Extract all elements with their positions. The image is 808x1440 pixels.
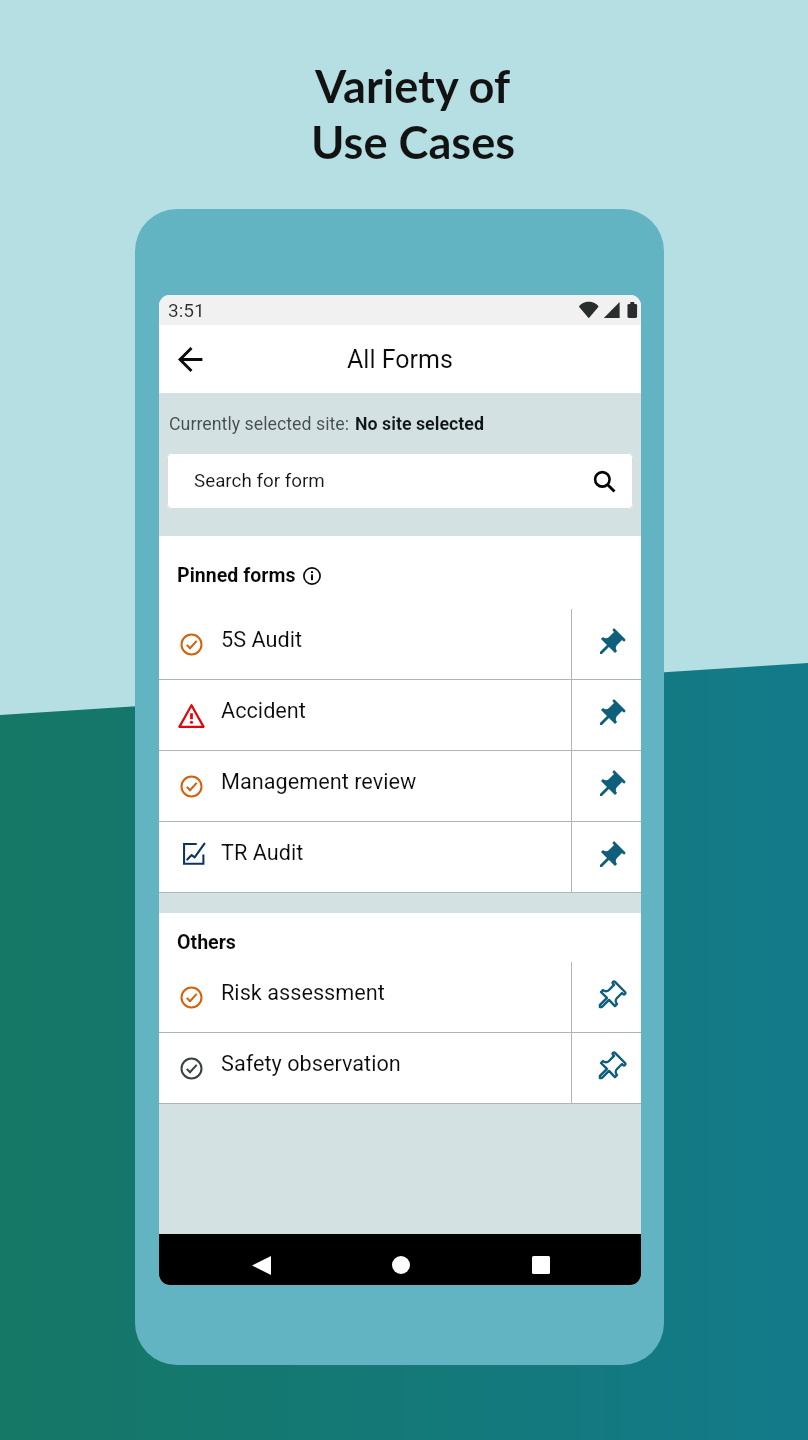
staticText: Management review: [221, 769, 417, 794]
staticText: No site selected: [355, 413, 484, 434]
button[interactable]: 5S Audit: [159, 609, 641, 679]
staticText: Others: [177, 931, 236, 954]
button[interactable]: Pin Safety observation: [572, 1033, 641, 1103]
button[interactable]: Accident: [159, 680, 641, 750]
button[interactable]: Management review: [159, 751, 641, 821]
button[interactable]: TR Audit: [159, 822, 641, 892]
staticText: All Forms: [347, 345, 453, 374]
staticText: Safety observation: [221, 1051, 401, 1076]
staticText: 3:51: [168, 299, 205, 321]
button[interactable]: Unpin Accident: [572, 680, 641, 750]
staticText: Risk assessment: [221, 980, 385, 1005]
button[interactable]: Unpin 5S Audit: [572, 609, 641, 679]
staticText: 5S Audit: [221, 627, 303, 652]
button[interactable]: Navigate back: [159, 325, 221, 393]
staticText: Pinned forms: [177, 564, 296, 587]
staticText: Accident: [221, 698, 306, 723]
button[interactable]: Pin Risk assessment: [572, 962, 641, 1032]
button[interactable]: Home: [377, 1241, 425, 1285]
button[interactable]: Recent apps: [517, 1241, 565, 1285]
button[interactable]: Search for form: [167, 453, 633, 509]
staticText: Variety of: [315, 58, 511, 112]
staticText: TR Audit: [221, 840, 304, 865]
button[interactable]: Safety observation: [159, 1033, 641, 1103]
button[interactable]: Unpin Management review: [572, 751, 641, 821]
staticText: Search for form: [194, 470, 325, 492]
button[interactable]: Back: [237, 1241, 285, 1285]
staticText: Use Cases: [311, 114, 516, 168]
staticText: Currently selected site:: [169, 413, 350, 434]
button[interactable]: Risk assessment: [159, 962, 641, 1032]
button[interactable]: Unpin TR Audit: [572, 822, 641, 892]
